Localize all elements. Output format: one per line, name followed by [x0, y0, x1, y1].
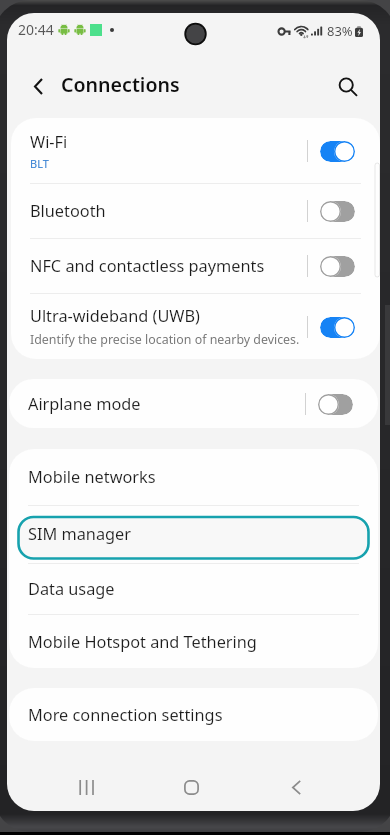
staticText: Airplane mode [28, 393, 141, 415]
button[interactable]: Off [320, 256, 355, 277]
button[interactable]: Home [163, 763, 219, 811]
button[interactable]: Search [327, 66, 369, 108]
button[interactable]: Bluetooth [11, 184, 380, 238]
button[interactable]: Ultra-wideband (UWB) [11, 294, 380, 359]
button[interactable]: NFC and contactless payments [11, 239, 380, 293]
button[interactable]: Navigate up [17, 65, 59, 107]
staticText: Identify the precise location of nearby … [30, 331, 300, 348]
staticText: 83% [327, 22, 353, 40]
button[interactable]: Mobile networks [9, 449, 378, 505]
staticText: Connections [61, 71, 180, 98]
staticText: More connection settings [28, 704, 223, 726]
button[interactable]: Mobile Hotspot and Tethering [9, 615, 378, 668]
button[interactable]: Recent apps [59, 763, 115, 811]
staticText: NFC and contactless payments [30, 255, 265, 277]
staticText: Wi-Fi [30, 131, 68, 153]
button[interactable]: SIM manager [9, 506, 378, 563]
button[interactable]: On [320, 141, 355, 162]
staticText: Mobile networks [28, 466, 156, 488]
button[interactable]: Wi-Fi [11, 118, 380, 183]
button[interactable]: Data usage [9, 564, 378, 614]
button[interactable]: Back [268, 763, 324, 811]
staticText: SIM manager [28, 523, 132, 545]
staticText: Bluetooth [30, 200, 106, 222]
button[interactable]: More connection settings [9, 688, 378, 741]
button[interactable]: Off [318, 394, 353, 415]
button[interactable]: Airplane mode [9, 379, 378, 428]
button[interactable]: Off [320, 201, 355, 222]
staticText: BLT [30, 156, 49, 171]
button[interactable]: On [320, 317, 355, 338]
staticText: Ultra-wideband (UWB) [30, 305, 200, 327]
staticText: 20:44 [18, 20, 54, 39]
staticText: Mobile Hotspot and Tethering [28, 631, 257, 653]
staticText: Data usage [28, 578, 115, 600]
